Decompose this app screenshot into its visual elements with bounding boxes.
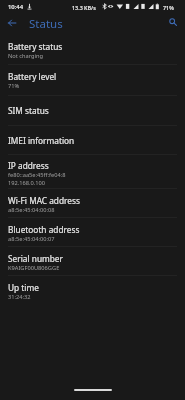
staticText: fe80::aa5e:45ff:fe04:8: [8, 171, 66, 179]
staticText: Up time: [8, 282, 39, 293]
button[interactable]: Up time: [0, 276, 185, 305]
staticText: Battery status: [8, 41, 63, 52]
staticText: Serial number: [8, 253, 63, 264]
button[interactable]: Search: [165, 14, 181, 30]
staticText: SIM status: [8, 105, 49, 116]
staticText: 71%: [163, 4, 174, 11]
button[interactable]: Battery status: [0, 36, 185, 65]
staticText: a8:5e:45:04:00:07: [8, 235, 55, 243]
staticText: 10:44: [8, 3, 24, 11]
staticText: Status: [29, 16, 63, 32]
button[interactable]: Wi-Fi MAC address: [0, 189, 185, 218]
staticText: 31:24:32: [8, 293, 31, 301]
staticText: 192.168.0.100: [8, 179, 46, 187]
button[interactable]: SIM status: [0, 96, 185, 126]
staticText: Battery level: [8, 71, 57, 82]
button[interactable]: IMEI information: [0, 126, 185, 155]
button[interactable]: Serial number: [0, 247, 185, 276]
button[interactable]: Back: [4, 15, 20, 31]
button[interactable]: IP address: [0, 155, 185, 189]
staticText: a8:5e:45:04:00:08: [8, 206, 55, 214]
staticText: 71%: [8, 82, 20, 90]
staticText: K9AIGF00U806GGE: [8, 264, 60, 272]
staticText: IP address: [8, 160, 49, 171]
button[interactable]: Battery level: [0, 65, 185, 96]
button[interactable]: Bluetooth address: [0, 218, 185, 247]
staticText: IMEI information: [8, 135, 75, 146]
staticText: Not charging: [8, 52, 44, 60]
staticText: Bluetooth address: [8, 224, 80, 235]
staticText: Wi-Fi MAC address: [8, 195, 80, 206]
staticText: 13.3 KB/s: [72, 4, 96, 11]
